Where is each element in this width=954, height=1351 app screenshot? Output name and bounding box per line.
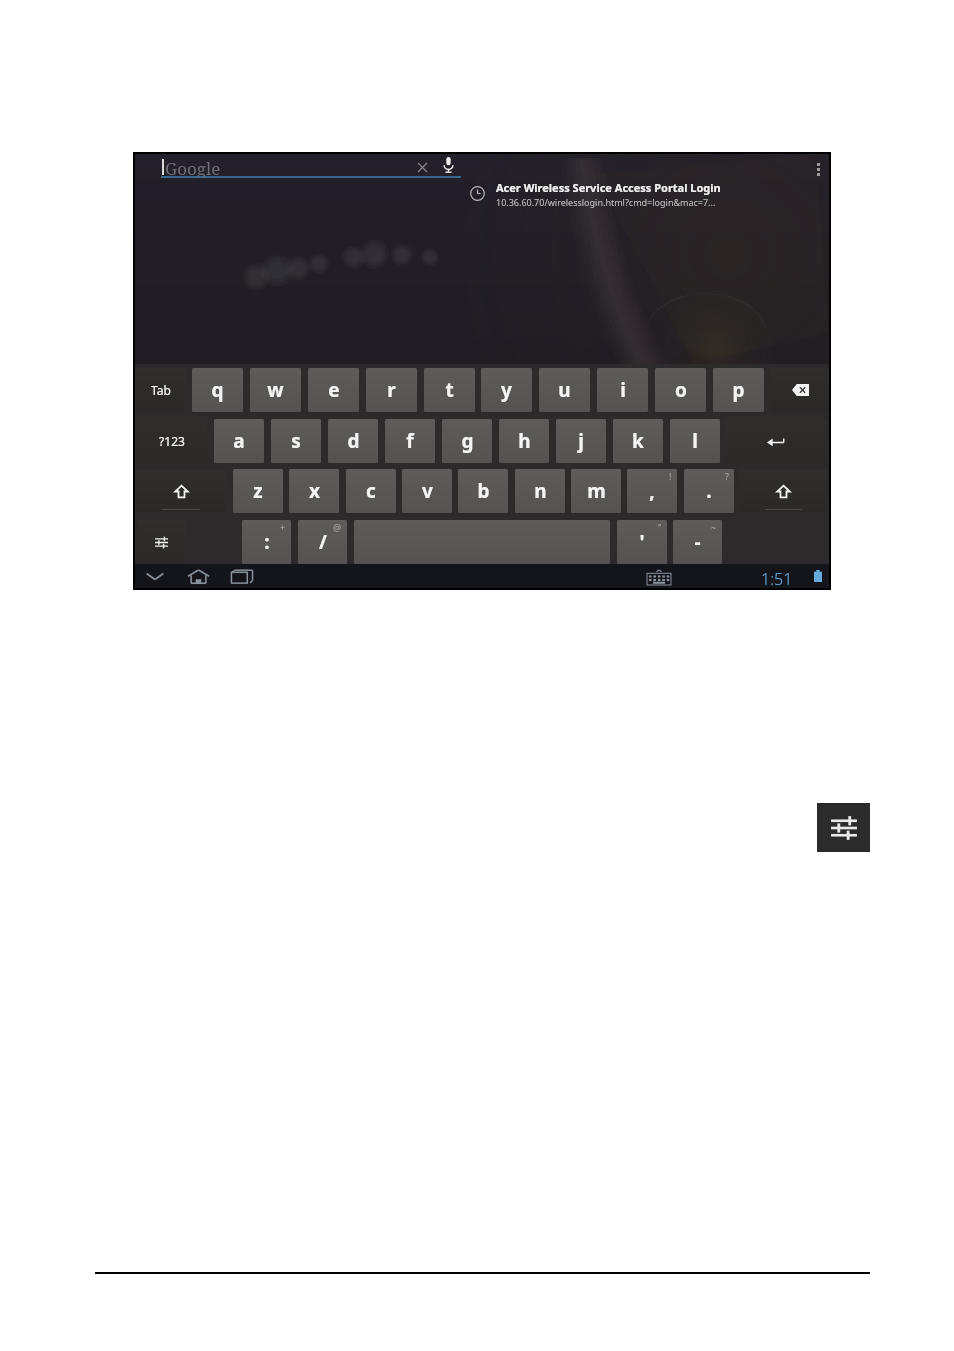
- staticText: ~: [711, 521, 717, 533]
- button[interactable]: Voice search: [439, 155, 457, 175]
- button[interactable]: q: [192, 368, 243, 412]
- staticText: l: [692, 428, 698, 454]
- staticText: n: [534, 478, 547, 504]
- staticText: ": [658, 521, 662, 533]
- staticText: a: [233, 428, 245, 454]
- staticText: q: [211, 377, 224, 403]
- staticText: h: [518, 428, 531, 454]
- staticText: i: [620, 377, 626, 403]
- button[interactable]: o: [655, 368, 706, 412]
- button[interactable]: z: [233, 469, 283, 513]
- button[interactable]: f: [385, 419, 435, 463]
- staticText: :: [264, 529, 270, 555]
- button[interactable]: d: [328, 419, 378, 463]
- staticText: +: [280, 521, 286, 533]
- staticText: 10.36.60.70/wirelesslogin.html?cmd=login…: [496, 196, 716, 208]
- staticText: Tab: [151, 382, 171, 398]
- button[interactable]: Google: [160, 157, 462, 177]
- staticText: j: [578, 428, 584, 454]
- button[interactable]: j: [556, 419, 606, 463]
- button[interactable]: l: [670, 419, 720, 463]
- button[interactable]: More options: [808, 156, 828, 182]
- button[interactable]: r: [366, 368, 417, 412]
- button[interactable]: [771, 368, 829, 412]
- staticText: f: [406, 428, 414, 454]
- button[interactable]: v: [402, 469, 452, 513]
- button[interactable]: y: [481, 368, 532, 412]
- button[interactable]: -: [673, 520, 722, 564]
- staticText: w: [267, 377, 284, 403]
- button[interactable]: a: [214, 419, 264, 463]
- staticText: g: [461, 428, 474, 454]
- staticText: 1:51: [761, 568, 793, 588]
- staticText: ,: [649, 478, 655, 504]
- button[interactable]: i: [597, 368, 648, 412]
- button[interactable]: n: [515, 469, 565, 513]
- staticText: @: [333, 521, 342, 533]
- button[interactable]: [136, 469, 226, 513]
- button[interactable]: .: [684, 469, 734, 513]
- button[interactable]: ,: [627, 469, 677, 513]
- button[interactable]: m: [571, 469, 621, 513]
- button[interactable]: [725, 419, 827, 463]
- button[interactable]: c: [346, 469, 396, 513]
- button[interactable]: [137, 520, 186, 564]
- staticText: x: [309, 478, 320, 504]
- staticText: Google: [165, 157, 221, 177]
- button[interactable]: p: [713, 368, 764, 412]
- button[interactable]: u: [539, 368, 590, 412]
- staticText: o: [675, 377, 687, 403]
- staticText: c: [366, 478, 376, 504]
- button[interactable]: ': [617, 520, 667, 564]
- staticText: m: [587, 478, 606, 504]
- staticText: b: [477, 478, 490, 504]
- button[interactable]: :: [242, 520, 291, 564]
- button[interactable]: t: [424, 368, 475, 412]
- staticText: y: [501, 377, 512, 403]
- staticText: !: [669, 470, 672, 482]
- button[interactable]: g: [442, 419, 492, 463]
- staticText: ?: [725, 470, 729, 482]
- staticText: r: [387, 377, 396, 403]
- button[interactable]: Back: [141, 564, 169, 588]
- staticText: Acer Wireless Service Access Portal Logi…: [496, 180, 721, 195]
- staticText: e: [328, 377, 340, 403]
- staticText: ': [639, 529, 645, 555]
- button[interactable]: w: [250, 368, 301, 412]
- button[interactable]: Settings: [817, 803, 870, 852]
- staticText: ?123: [159, 433, 185, 449]
- staticText: k: [632, 428, 644, 454]
- staticText: d: [347, 428, 360, 454]
- staticText: p: [732, 377, 745, 403]
- staticText: z: [253, 478, 263, 504]
- staticText: /: [319, 529, 327, 555]
- button[interactable]: Keyboard: [645, 567, 673, 587]
- button[interactable]: x: [289, 469, 339, 513]
- button[interactable]: Clear search: [414, 159, 430, 175]
- button[interactable]: s: [271, 419, 321, 463]
- button[interactable]: e: [308, 368, 359, 412]
- button[interactable]: Tab: [136, 368, 186, 412]
- button[interactable]: k: [613, 419, 663, 463]
- staticText: -: [694, 529, 701, 555]
- button[interactable]: Recent apps: [227, 564, 257, 588]
- staticText: t: [445, 377, 454, 403]
- staticText: s: [291, 428, 301, 454]
- button[interactable]: h: [499, 419, 549, 463]
- button[interactable]: b: [458, 469, 508, 513]
- staticText: u: [558, 377, 571, 403]
- staticText: .: [706, 478, 712, 504]
- button[interactable]: Acer Wireless Service Access Portal Logi…: [470, 180, 730, 208]
- button[interactable]: ?123: [136, 419, 207, 463]
- button[interactable]: [739, 469, 827, 513]
- button[interactable]: Home: [183, 564, 214, 588]
- button[interactable]: /: [298, 520, 347, 564]
- staticText: v: [422, 478, 433, 504]
